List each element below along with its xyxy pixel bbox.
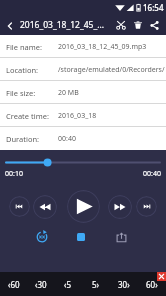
button[interactable]: 60›	[138, 272, 166, 296]
button[interactable]: Delete	[131, 18, 145, 32]
staticText: 16:54	[143, 2, 164, 13]
staticText: 20 MB	[58, 88, 79, 98]
button[interactable]: Previous	[9, 196, 30, 217]
staticText: 2016_03_18	[58, 111, 97, 121]
button[interactable]: ‹5	[54, 272, 82, 296]
button[interactable]: Share	[147, 18, 161, 32]
button[interactable]: Back	[2, 18, 17, 33]
button[interactable]: Repeat	[33, 228, 51, 246]
button[interactable]: Rewind	[33, 195, 57, 219]
staticText: ‹5	[64, 279, 72, 290]
button[interactable]: ‹30	[27, 272, 54, 296]
button[interactable]: Close ad	[157, 272, 166, 281]
staticText: 00:10	[5, 169, 23, 179]
button[interactable]: 30›	[110, 272, 138, 296]
staticText: File size:	[6, 88, 58, 98]
staticText: Create time:	[6, 111, 58, 121]
staticText: /storage/emulated/0/Recorders/	[58, 65, 165, 75]
staticText: 30›	[118, 279, 130, 290]
button[interactable]: Trim	[113, 17, 129, 33]
staticText: 5›	[92, 279, 100, 290]
staticText: Duration:	[6, 134, 58, 144]
staticText: 00:40	[58, 134, 76, 144]
button[interactable]: Next	[136, 196, 157, 217]
button[interactable]: Play	[67, 190, 100, 223]
button[interactable]: Export	[112, 228, 130, 246]
button[interactable]: Stop	[72, 228, 90, 246]
staticText: 60›	[146, 279, 158, 290]
button[interactable]: ‹60	[0, 272, 27, 296]
staticText: 00:40	[143, 169, 161, 179]
staticText: ‹60	[8, 279, 20, 290]
button[interactable]: 5›	[82, 272, 110, 296]
button[interactable]: Fast forward	[108, 195, 132, 219]
staticText: Location:	[6, 65, 58, 75]
staticText: 2016_03_18_12_45_09.mp3	[58, 42, 147, 52]
staticText: ‹30	[35, 279, 47, 290]
staticText: 2016_03_18_12_45_...	[20, 19, 113, 31]
staticText: File name:	[6, 42, 58, 52]
